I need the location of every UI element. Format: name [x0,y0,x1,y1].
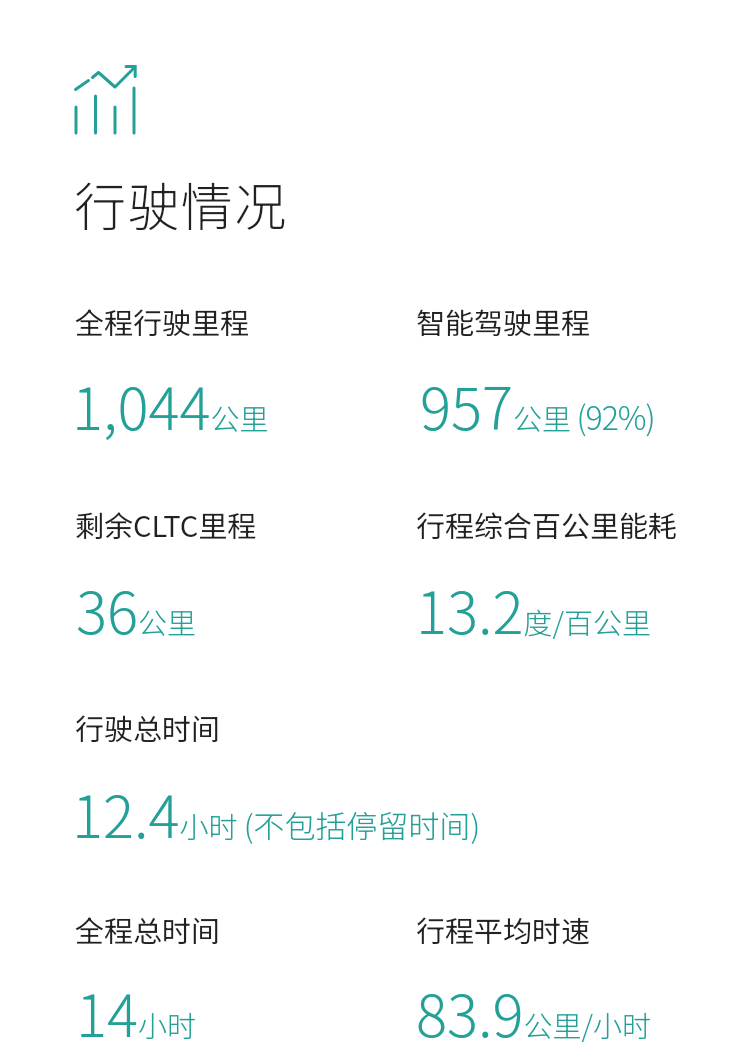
staticText: 14小时 [76,970,197,1054]
button[interactable]: 全程行驶里程 [75,300,405,442]
button[interactable]: 智能驾驶里程 [416,300,744,442]
staticText: 83.9公里/小时 [416,970,652,1054]
staticText: 957公里 (92%) [420,363,655,447]
staticText: 全程行驶里程 [75,300,250,342]
staticText: 全程总时间 [75,908,221,950]
button[interactable]: Driving statistics [66,56,146,142]
staticText: 行驶总时间 [75,706,221,748]
staticText: 13.2度/百公里 [416,567,652,651]
button[interactable]: 行驶情况 [66,172,296,238]
button[interactable]: 剩余CLTC里程 [75,503,405,646]
button[interactable]: 全程总时间 [75,908,405,1049]
staticText: 36公里 [76,567,197,651]
staticText: 1,044公里 [72,363,269,447]
staticText: 剩余CLTC里程 [75,503,257,545]
staticText: 行程综合百公里能耗 [416,503,678,545]
button[interactable]: 行驶总时间 [75,706,675,850]
button[interactable]: 行程平均时速 [416,908,744,1049]
staticText: 12.4小时 (不包括停留时间) [72,771,481,855]
staticText: 智能驾驶里程 [416,300,591,342]
staticText: 行驶情况 [74,166,288,241]
button[interactable]: 行程综合百公里能耗 [416,503,744,646]
staticText: 行程平均时速 [416,908,591,950]
